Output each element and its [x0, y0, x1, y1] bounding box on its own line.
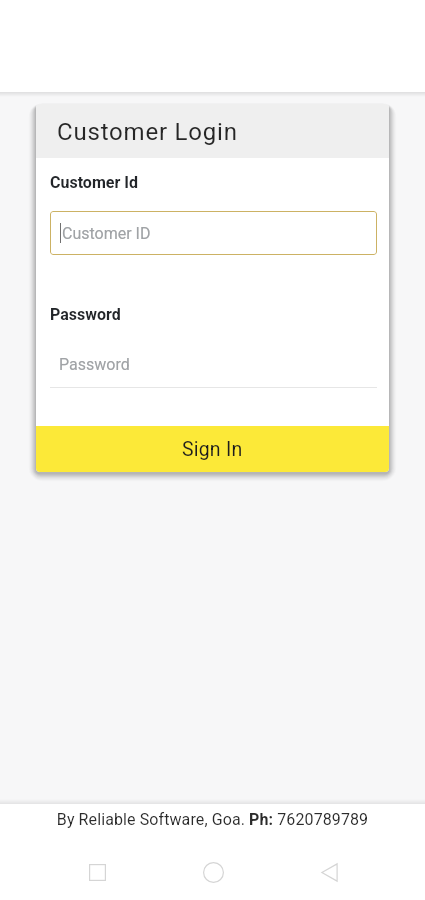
staticText: Sign In [182, 438, 243, 461]
button[interactable]: Recent apps [53, 844, 141, 900]
staticText: Customer Login [57, 118, 238, 146]
staticText: Customer ID [62, 224, 151, 243]
button[interactable]: Back [285, 844, 373, 900]
button[interactable]: Sign In [36, 426, 389, 472]
staticText: By Reliable Software, Goa. Ph: 762078978… [0, 810, 425, 829]
staticText: Password [59, 355, 130, 374]
staticText: Password [50, 305, 121, 324]
button[interactable]: Home [169, 844, 257, 900]
staticText: Customer Id [50, 173, 138, 192]
button[interactable]: Customer ID [50, 211, 377, 255]
